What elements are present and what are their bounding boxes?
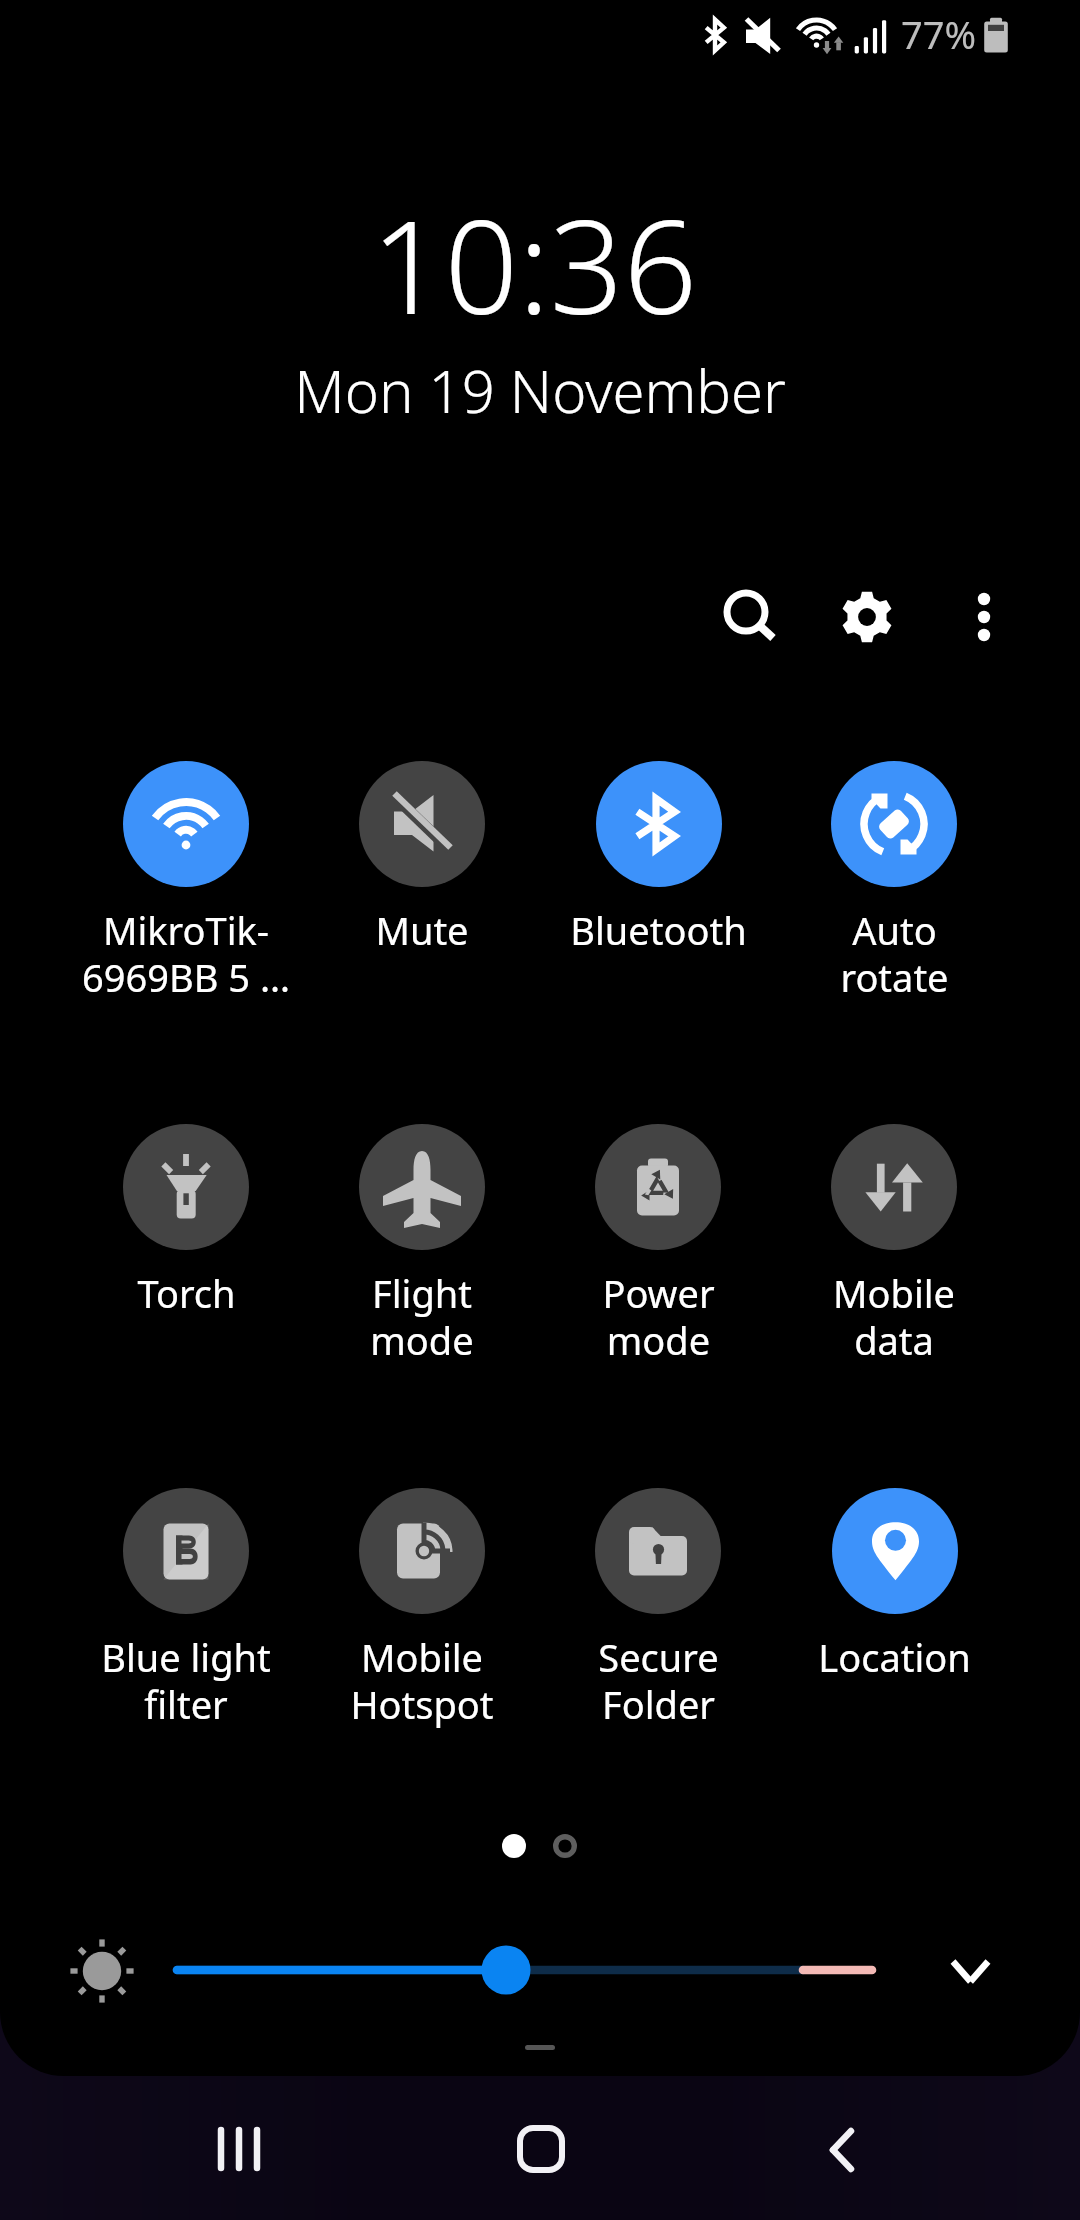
button[interactable]: MikroTik- 6969BB 5 …: [68, 761, 304, 1013]
button[interactable]: Location: [776, 1488, 1012, 1740]
staticText: 10:36: [0, 176, 1074, 352]
staticText: 77%: [901, 8, 977, 60]
button[interactable]: Mobile Hotspot: [304, 1488, 540, 1740]
button[interactable]: Blue light filter: [68, 1488, 304, 1740]
button[interactable]: More options: [930, 562, 1038, 670]
button[interactable]: Bluetooth: [540, 761, 776, 1013]
button[interactable]: Flight mode: [304, 1124, 540, 1376]
button[interactable]: Back: [772, 2080, 912, 2220]
staticText: MikroTik- 6969BB 5 …: [82, 904, 290, 1003]
staticText: Torch: [137, 1267, 236, 1319]
staticText: Blue light filter: [101, 1631, 271, 1730]
staticText: Bluetooth: [570, 904, 747, 956]
staticText: Mobile data: [833, 1267, 955, 1366]
staticText: Flight mode: [370, 1267, 474, 1366]
button[interactable]: Secure Folder: [540, 1488, 776, 1740]
staticText: Auto rotate: [840, 904, 949, 1003]
button[interactable]: Search: [700, 562, 808, 670]
button[interactable]: Mobile data: [776, 1124, 1012, 1376]
staticText: Secure Folder: [598, 1631, 719, 1730]
button[interactable]: Settings: [813, 562, 921, 670]
button[interactable]: Auto rotate: [776, 761, 1012, 1013]
staticText: Mute: [375, 904, 469, 956]
staticText: Mobile Hotspot: [350, 1631, 494, 1730]
button[interactable]: Power mode: [540, 1124, 776, 1376]
button[interactable]: Mute: [304, 761, 540, 1013]
button[interactable]: Recent apps: [169, 2079, 309, 2219]
button[interactable]: Torch: [68, 1124, 304, 1376]
button[interactable]: Home: [471, 2079, 611, 2219]
staticText: Mon 19 November: [0, 351, 1080, 430]
staticText: Location: [818, 1631, 971, 1683]
staticText: Power mode: [602, 1267, 715, 1366]
